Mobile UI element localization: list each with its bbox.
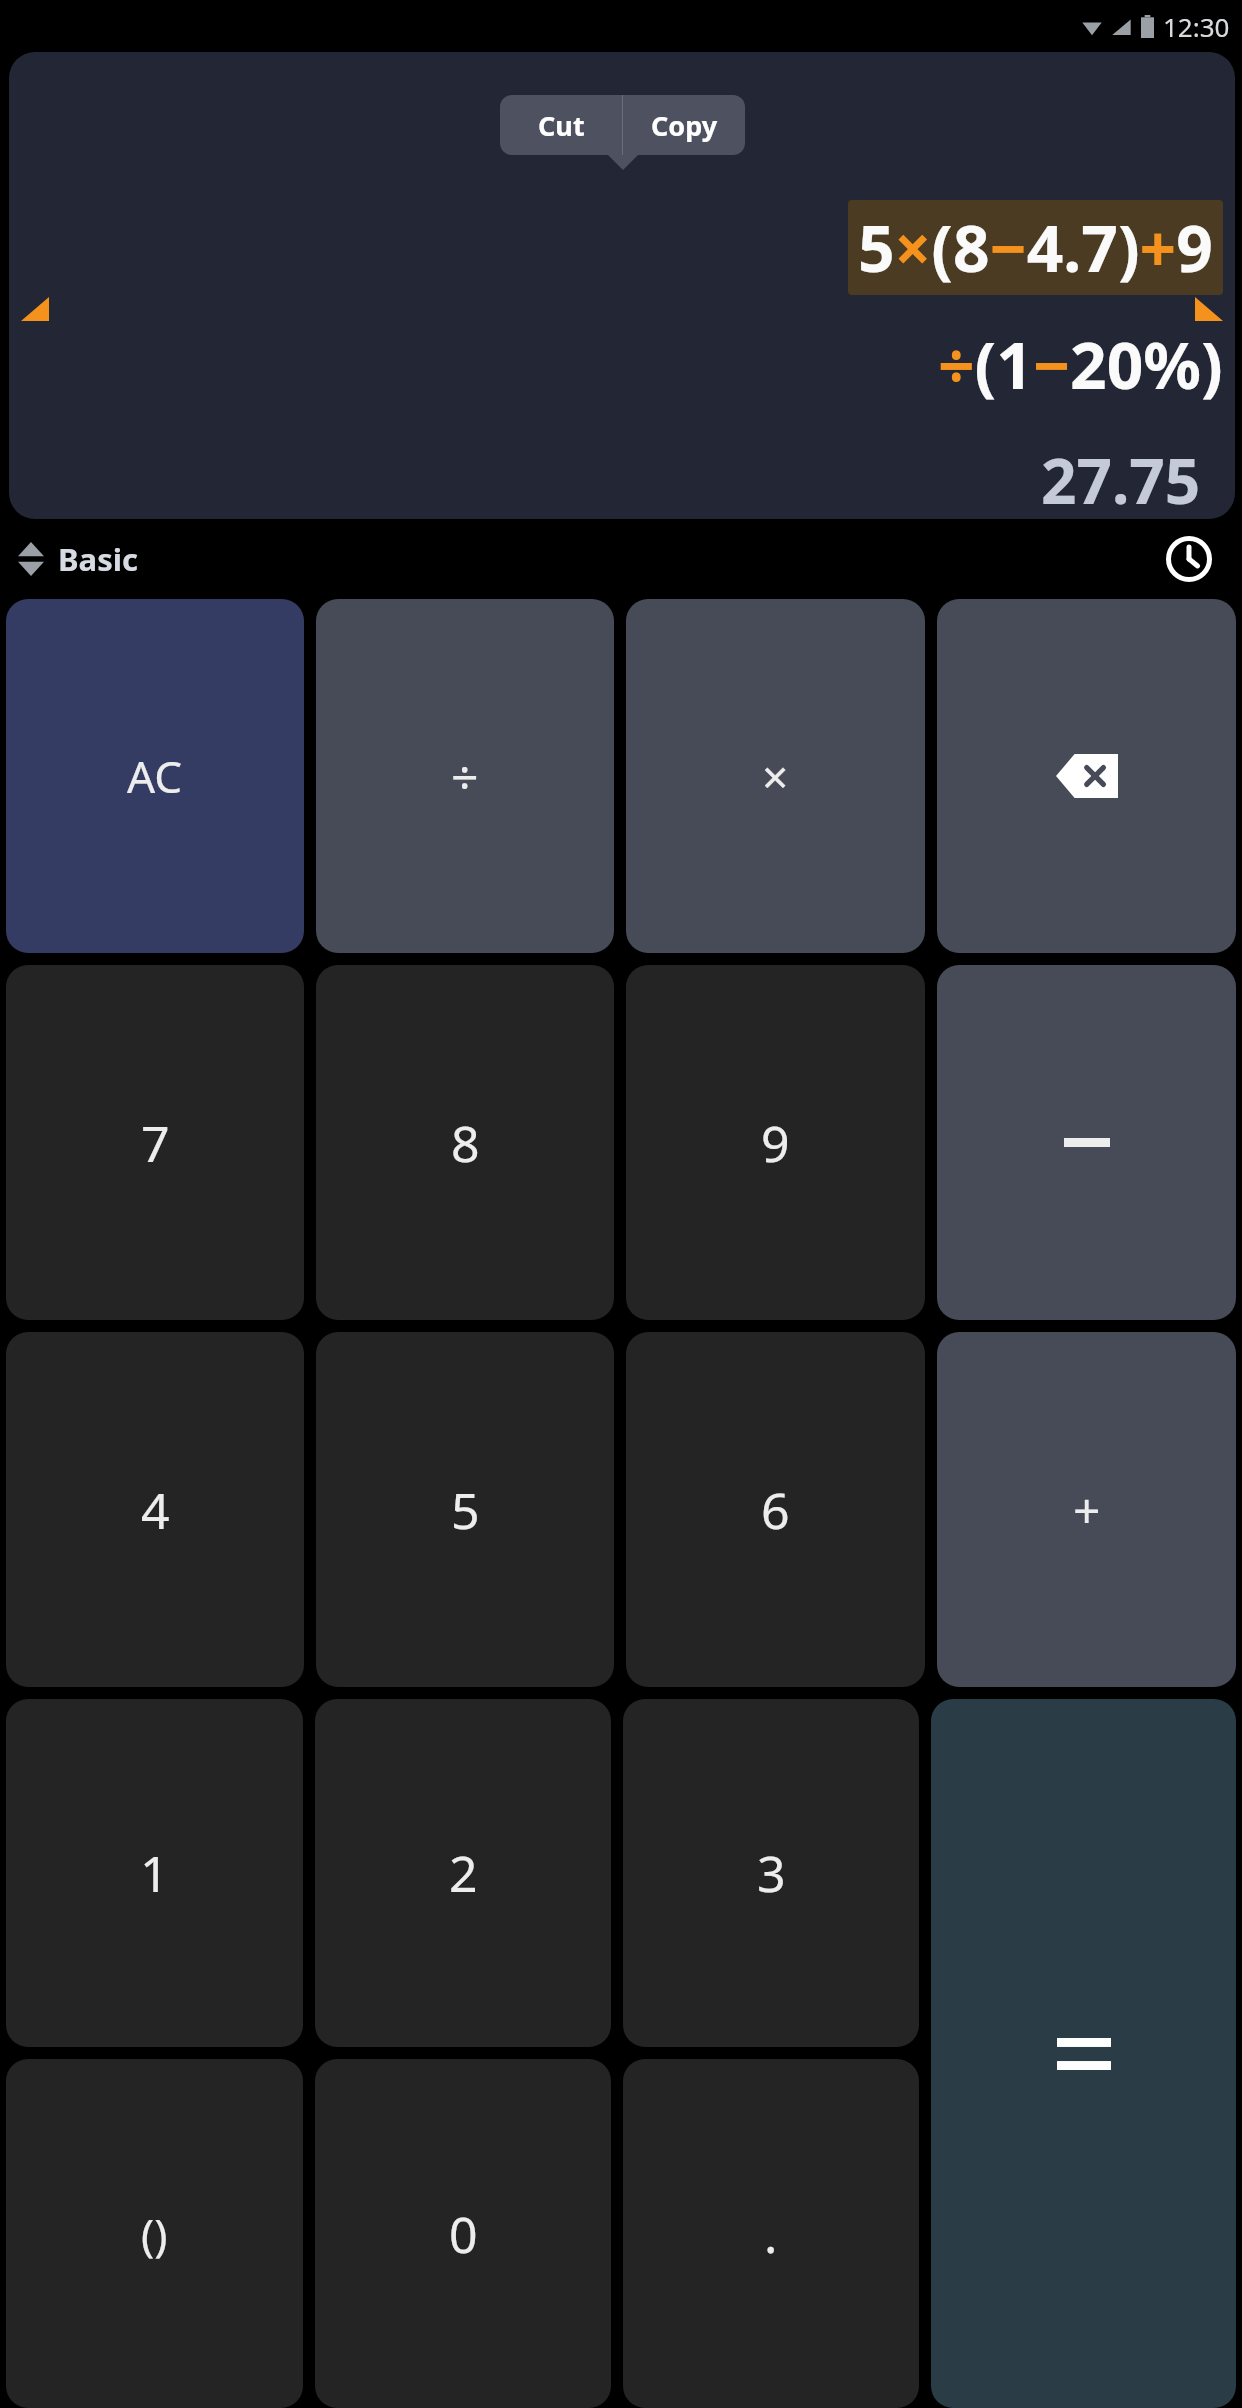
button[interactable]: 1 bbox=[6, 1699, 303, 2047]
button[interactable]: History bbox=[1158, 528, 1220, 590]
button[interactable]: . bbox=[623, 2059, 919, 2408]
staticText: ÷ bbox=[451, 744, 479, 809]
button[interactable]: 4 bbox=[6, 1332, 304, 1687]
button[interactable]: 7 bbox=[6, 965, 304, 1320]
staticText: 2 bbox=[449, 1839, 478, 1907]
staticText: × bbox=[762, 745, 789, 808]
staticText: . bbox=[764, 2200, 778, 2268]
staticText: ÷(1−20%) bbox=[938, 321, 1223, 408]
staticText: AC bbox=[127, 746, 183, 806]
staticText: 6 bbox=[761, 1476, 790, 1544]
button[interactable]: 0 bbox=[315, 2059, 611, 2408]
staticText: 12:30 bbox=[1163, 9, 1230, 44]
staticText: 5×(8−4.7)+9 bbox=[858, 204, 1213, 291]
staticText: 8 bbox=[451, 1109, 480, 1177]
staticText: 7 bbox=[141, 1109, 170, 1177]
button[interactable]: AC bbox=[6, 599, 304, 953]
button[interactable]: ÷ bbox=[316, 599, 614, 953]
button[interactable]: Cut bbox=[500, 95, 622, 155]
staticText: 9 bbox=[761, 1109, 790, 1177]
staticText: Basic bbox=[58, 538, 139, 580]
button[interactable]: 2 bbox=[315, 1699, 611, 2047]
staticText: 4 bbox=[141, 1476, 170, 1544]
button[interactable]: Minus bbox=[937, 965, 1236, 1320]
button[interactable]: + bbox=[937, 1332, 1236, 1687]
button[interactable]: Backspace bbox=[937, 599, 1236, 953]
staticText: 3 bbox=[757, 1839, 786, 1907]
staticText: 0 bbox=[449, 2200, 478, 2268]
button[interactable]: 5 bbox=[316, 1332, 614, 1687]
button[interactable]: Equals bbox=[931, 1699, 1236, 2408]
staticText: 1 bbox=[140, 1839, 169, 1907]
button[interactable]: 3 bbox=[623, 1699, 919, 2047]
staticText: 5 bbox=[451, 1476, 480, 1544]
button[interactable]: () bbox=[6, 2059, 303, 2408]
button[interactable]: 6 bbox=[626, 1332, 925, 1687]
button[interactable]: × bbox=[626, 599, 925, 953]
staticText: + bbox=[1073, 1477, 1101, 1542]
button[interactable]: 8 bbox=[316, 965, 614, 1320]
staticText: () bbox=[141, 2204, 168, 2264]
staticText: Copy bbox=[651, 107, 718, 144]
button[interactable]: Basic bbox=[18, 538, 139, 580]
staticText: 27.75 bbox=[1041, 438, 1201, 519]
button[interactable]: 9 bbox=[626, 965, 925, 1320]
staticText: Cut bbox=[538, 107, 585, 144]
button[interactable]: Copy bbox=[623, 95, 745, 155]
